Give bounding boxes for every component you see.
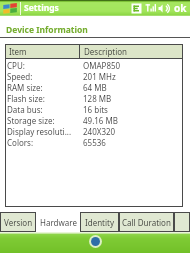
- staticText: 240X320: [83, 126, 116, 137]
- staticText: Data bus:: [7, 104, 43, 115]
- staticText: CPU:: [7, 60, 25, 71]
- button[interactable]: Identity: [80, 212, 119, 232]
- button[interactable]: Flash size:: [5, 93, 183, 104]
- staticText: Item: [9, 46, 27, 57]
- staticText: 64 MB: [83, 82, 107, 93]
- staticText: Hardware: [40, 217, 77, 228]
- staticText: Version: [4, 217, 33, 228]
- button[interactable]: Hardware: [36, 212, 80, 232]
- button[interactable]: ok: [171, 0, 190, 16]
- button[interactable]: Display resoluti...: [5, 126, 183, 137]
- staticText: Device Information: [6, 24, 88, 36]
- staticText: Storage size:: [7, 115, 55, 126]
- staticText: Description: [84, 46, 128, 57]
- staticText: Speed:: [7, 71, 33, 82]
- button[interactable]: Colors:: [5, 137, 183, 148]
- staticText: 201 MHz: [83, 71, 116, 82]
- button[interactable]: Data bus:: [5, 104, 183, 115]
- button[interactable]: Storage size:: [5, 115, 183, 126]
- staticText: Colors:: [7, 137, 34, 148]
- staticText: OMAP850: [83, 60, 121, 71]
- button[interactable]: Speed:: [5, 71, 183, 82]
- other: Signal strength: [145, 3, 156, 14]
- staticText: 49.16 MB: [83, 115, 118, 126]
- staticText: RAM size:: [7, 82, 43, 93]
- staticText: Flash size:: [7, 93, 45, 104]
- staticText: ok: [174, 1, 187, 15]
- button[interactable]: Input panel: [89, 235, 102, 248]
- staticText: 128 MB: [83, 93, 112, 104]
- other: Connectivity: [131, 3, 142, 14]
- button[interactable]: Version: [0, 212, 36, 232]
- staticText: Settings: [24, 2, 59, 14]
- button[interactable]: Start: [0, 0, 20, 16]
- staticText: 65536: [83, 137, 106, 148]
- button[interactable]: CPU:: [5, 60, 183, 71]
- other: Volume: [158, 3, 169, 14]
- button[interactable]: RAM size:: [5, 82, 183, 93]
- button[interactable]: Call Duration: [119, 212, 174, 232]
- staticText: Identity: [85, 217, 115, 228]
- staticText: 16 bits: [83, 104, 108, 115]
- staticText: Call Duration: [122, 217, 171, 228]
- staticText: Display resoluti...: [7, 126, 72, 137]
